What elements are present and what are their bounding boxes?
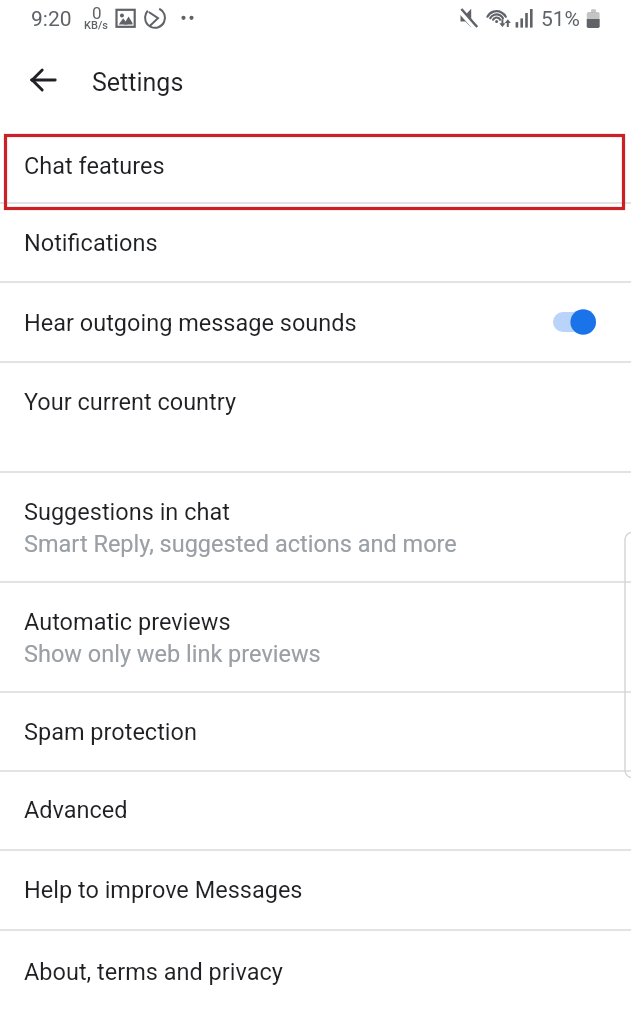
- staticText: Help to improve Messages: [24, 876, 303, 904]
- staticText: Spam protection: [24, 718, 197, 746]
- button[interactable]: Chat features: [0, 124, 631, 204]
- button[interactable]: About, terms and privacy: [0, 931, 631, 1024]
- button[interactable]: Hear outgoing message sounds: [0, 283, 631, 363]
- staticText: Suggestions in chat: [24, 498, 230, 526]
- button[interactable]: Hear outgoing message sounds toggle: [553, 306, 596, 338]
- staticText: Automatic previews: [24, 608, 231, 636]
- button[interactable]: Your current country: [0, 363, 631, 473]
- staticText: Chat features: [24, 152, 165, 180]
- button[interactable]: Notifications: [0, 204, 631, 283]
- staticText: 0: [92, 3, 102, 23]
- staticText: Your current country: [24, 388, 237, 416]
- staticText: 51%: [541, 7, 580, 32]
- staticText: KB/s: [84, 19, 108, 32]
- button[interactable]: Automatic previews: [0, 583, 631, 693]
- button[interactable]: Suggestions in chat: [0, 473, 631, 583]
- button[interactable]: Advanced: [0, 772, 631, 851]
- staticText: Smart Reply, suggested actions and more: [24, 530, 457, 558]
- staticText: Hear outgoing message sounds: [24, 309, 357, 337]
- staticText: Advanced: [24, 796, 128, 824]
- staticText: Show only web link previews: [24, 640, 321, 668]
- staticText: Settings: [92, 68, 184, 97]
- button[interactable]: Back: [18, 57, 68, 107]
- staticText: 9:20: [31, 7, 72, 32]
- staticText: About, terms and privacy: [24, 958, 283, 986]
- button[interactable]: Help to improve Messages: [0, 851, 631, 931]
- button[interactable]: Spam protection: [0, 693, 631, 772]
- staticText: Notifications: [24, 229, 158, 257]
